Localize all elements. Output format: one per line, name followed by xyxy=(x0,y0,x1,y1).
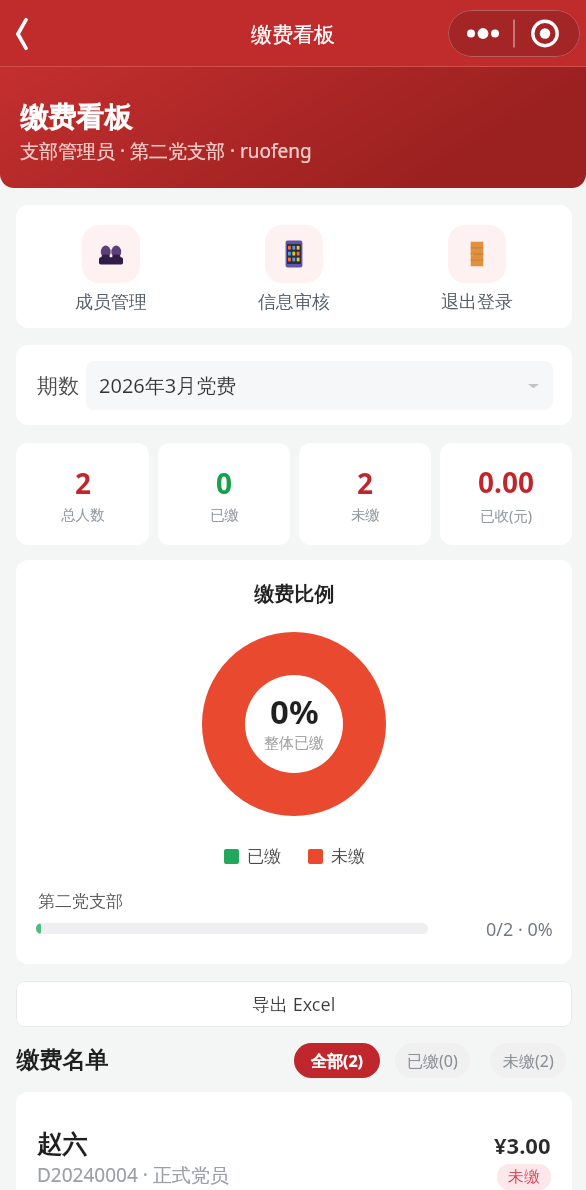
staticText: 缴费看板 xyxy=(20,100,132,135)
staticText: 0% xyxy=(270,689,319,734)
staticText: 期数 xyxy=(37,373,79,399)
staticText: 2026年3月党费 xyxy=(99,372,237,399)
staticText: 0 xyxy=(216,464,233,502)
staticText: 缴费比例 xyxy=(254,582,334,607)
button[interactable]: 2026年3月党费 xyxy=(86,361,553,410)
button[interactable]: Menu and close xyxy=(448,10,580,57)
staticText: 未缴 xyxy=(331,846,365,867)
staticText: 总人数 xyxy=(61,506,105,524)
staticText: 已缴(0) xyxy=(407,1050,458,1072)
staticText: 全部(2) xyxy=(311,1050,364,1072)
button[interactable]: 已缴(0) xyxy=(395,1043,470,1078)
staticText: 退出登录 xyxy=(441,291,513,314)
button[interactable]: 2 xyxy=(299,443,431,545)
staticText: ¥3.00 xyxy=(494,1130,551,1160)
staticText: 已收(元) xyxy=(480,505,533,525)
staticText: 0/2 · 0% xyxy=(486,917,553,942)
button[interactable]: 导出 Excel xyxy=(16,981,572,1027)
staticText: 缴费看板 xyxy=(251,22,335,48)
button[interactable]: 成员管理 xyxy=(20,205,202,314)
staticText: 未缴 xyxy=(508,1167,540,1187)
button[interactable]: 信息审核 xyxy=(202,205,385,314)
button[interactable]: 2 xyxy=(16,443,149,545)
staticText: 已缴 xyxy=(247,846,281,867)
staticText: D20240004 · 正式党员 xyxy=(37,1162,229,1188)
button[interactable]: 未缴(2) xyxy=(490,1043,566,1078)
button[interactable]: 赵六 xyxy=(16,1092,572,1190)
staticText: 已缴 xyxy=(210,506,239,524)
button[interactable]: Back xyxy=(0,12,44,56)
staticText: 导出 Excel xyxy=(252,992,336,1017)
staticText: 未缴 xyxy=(351,506,380,524)
staticText: 成员管理 xyxy=(75,291,147,314)
staticText: 2 xyxy=(357,464,374,502)
staticText: 0.00 xyxy=(478,463,534,501)
button[interactable]: 0 xyxy=(158,443,290,545)
staticText: 缴费名单 xyxy=(16,1046,108,1075)
staticText: 未缴(2) xyxy=(503,1050,554,1072)
staticText: 支部管理员 · 第二党支部 · ruofeng xyxy=(20,138,312,164)
button[interactable]: 全部(2) xyxy=(294,1043,380,1078)
staticText: 整体已缴 xyxy=(264,734,324,753)
staticText: 2 xyxy=(75,464,92,502)
staticText: 第二党支部 xyxy=(38,891,123,912)
button[interactable]: 退出登录 xyxy=(385,205,568,314)
button[interactable]: 0.00 xyxy=(440,443,572,545)
staticText: 信息审核 xyxy=(258,291,330,314)
staticText: 赵六 xyxy=(37,1129,87,1160)
